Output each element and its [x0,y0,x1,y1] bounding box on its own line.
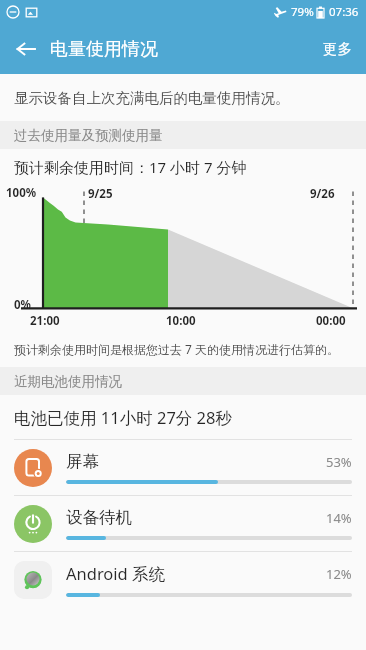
staticText: 电池已使用 11小时 27分 28秒 [14,406,232,429]
button[interactable]: Android 系统 [0,552,366,607]
button[interactable]: 设备待机 [0,496,366,551]
staticText: 更多 [323,40,352,58]
staticText: 00:00 [316,313,346,329]
staticText: 过去使用量及预测使用量 [14,127,163,144]
staticText: 07:36 [329,4,359,20]
staticText: 9/26 [310,186,335,202]
staticText: 10:00 [166,313,196,329]
staticText: 电量使用情况 [50,38,158,61]
staticText: 12% [326,565,352,583]
staticText: 14% [326,509,352,527]
staticText: 79% [291,4,314,20]
staticText: Android 系统 [66,562,166,585]
staticText: 21:00 [30,313,60,329]
staticText: 100% [6,185,37,201]
button[interactable]: 更多 [309,30,366,68]
staticText: 近期电池使用情况 [14,373,122,390]
staticText: 预计剩余使用时间是根据您过去 7 天的使用情况进行估算的。 [14,341,340,357]
button[interactable]: 屏幕 [0,440,366,495]
staticText: 显示设备自上次充满电后的电量使用情况。 [14,89,290,107]
staticText: 9/25 [88,186,113,202]
staticText: 设备待机 [66,507,132,528]
staticText: 屏幕 [66,451,99,472]
button[interactable]: Back [8,31,44,67]
staticText: 预计剩余使用时间：17 小时 7 分钟 [14,157,247,177]
staticText: 0% [14,297,31,313]
staticText: 53% [326,453,352,471]
